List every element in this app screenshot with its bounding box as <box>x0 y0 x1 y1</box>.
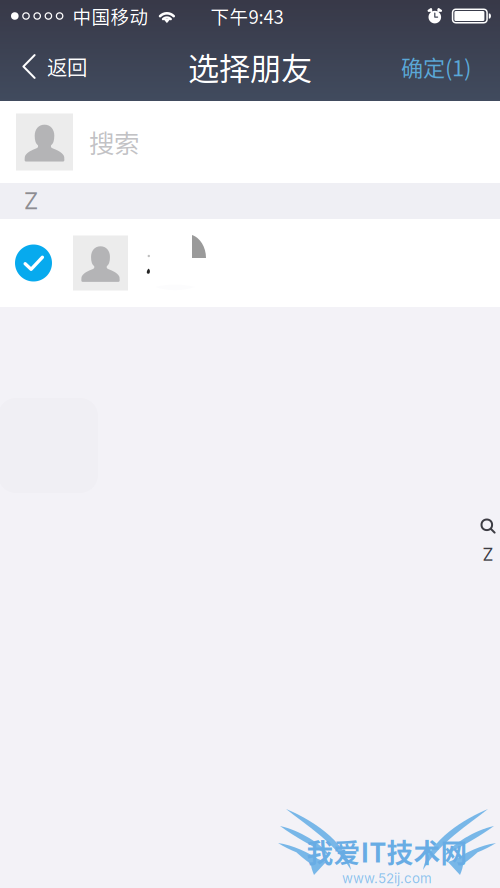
staticText: 搜索 <box>89 124 139 160</box>
button[interactable]: 返回 <box>0 32 87 101</box>
staticText: 返回 <box>47 52 87 81</box>
staticText: 下午9:43 <box>210 3 283 29</box>
button[interactable]: 确定(1) <box>401 32 500 101</box>
staticText: Z <box>482 544 493 565</box>
staticText: Z <box>24 187 38 215</box>
button[interactable]: Section index <box>476 518 500 565</box>
button[interactable]: 搜索 <box>0 101 500 183</box>
staticText: 我爱IT技术网 <box>306 832 467 870</box>
staticText: 确定(1) <box>401 50 471 82</box>
staticText: 中国移动 <box>72 3 148 29</box>
staticText: 选择朋友 <box>188 44 312 89</box>
staticText: www.52ij.com <box>342 870 432 886</box>
button[interactable] <box>0 219 500 307</box>
